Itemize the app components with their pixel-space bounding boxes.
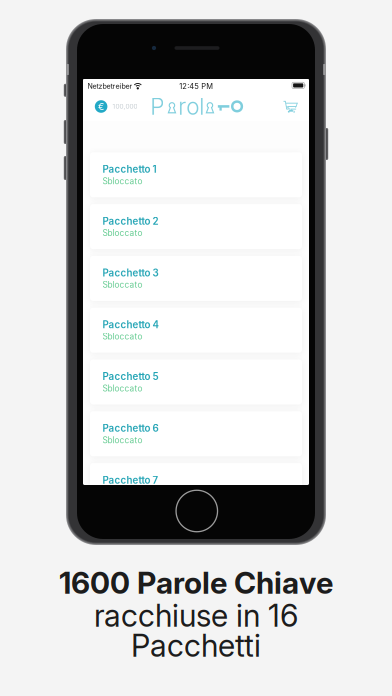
staticText: Sbloccato — [102, 332, 142, 342]
button[interactable]: Pacchetto 3 — [90, 256, 302, 301]
staticText: 12:45 PM — [179, 82, 213, 91]
button[interactable]: Shop — [283, 96, 309, 117]
staticText: Pacchetto 3 — [102, 267, 158, 279]
staticText: Pacchetto 5 — [102, 371, 158, 382]
staticText: Sbloccato — [102, 280, 142, 290]
staticText: rol — [178, 93, 204, 120]
staticText: Netzbetreiber — [87, 82, 132, 90]
staticText: Sbloccato — [102, 176, 142, 186]
staticText: Sbloccato — [102, 383, 142, 393]
button[interactable]: Pacchetto 7 — [90, 463, 302, 508]
staticText: 100,000 — [112, 103, 137, 110]
staticText: Pacchetti — [131, 627, 261, 664]
staticText: 1600 Parole Chiave — [59, 564, 333, 601]
staticText: Sbloccato — [102, 228, 142, 238]
button[interactable]: Pacchetto 1 — [90, 152, 302, 197]
staticText: racchiuse in 16 — [94, 597, 298, 634]
staticText: Pacchetto 6 — [102, 422, 158, 434]
button[interactable]: Pacchetto 2 — [90, 204, 302, 249]
staticText: Pacchetto 7 — [102, 474, 158, 486]
button[interactable]: Pacchetto 8 — [90, 515, 302, 560]
button[interactable]: Pacchetto 5 — [90, 359, 302, 404]
button[interactable]: Pacchetto 4 — [90, 308, 302, 353]
staticText: Pacchetto 2 — [102, 215, 158, 227]
staticText: € — [98, 101, 104, 112]
staticText: Pacchetto 1 — [102, 163, 156, 175]
staticText: Sbloccato — [102, 435, 142, 445]
button[interactable]: € — [83, 94, 137, 119]
staticText: Pacchetto 4 — [102, 319, 158, 331]
staticText: Sbloccato — [102, 539, 142, 549]
staticText: P — [150, 93, 164, 120]
button[interactable]: Pacchetto 6 — [90, 411, 302, 456]
